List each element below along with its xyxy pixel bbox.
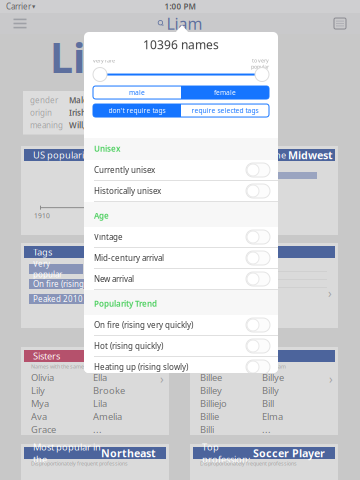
button[interactable]: Currently unisex <box>84 160 278 181</box>
staticText: Names with the same style as Liam <box>31 363 117 370</box>
staticText: › <box>328 285 332 301</box>
staticText: ▾ <box>32 3 35 10</box>
staticText: very rare <box>93 57 115 64</box>
staticText: popular <box>251 63 269 70</box>
staticText: ... <box>93 423 102 436</box>
staticText: Tags <box>33 246 52 258</box>
staticText: Billi <box>200 423 214 436</box>
staticText: Billye <box>262 371 284 384</box>
staticText: Brothers <box>202 350 240 362</box>
staticText: Will, desire <box>69 120 111 130</box>
button[interactable]: Historically unisex <box>84 181 278 202</box>
button[interactable]: Vintage <box>84 227 278 248</box>
button[interactable]: New arrival <box>84 269 278 290</box>
button[interactable]: Heating up (rising slowly) <box>84 357 278 378</box>
staticText: 10396 names <box>143 36 219 52</box>
staticText: › <box>160 371 164 387</box>
staticText: Disproportionately frequent professions <box>31 460 128 467</box>
staticText: Brooke <box>93 384 125 397</box>
staticText: Sisters <box>33 350 60 362</box>
staticText: Billie <box>200 410 219 423</box>
button[interactable]: Menu <box>8 14 32 32</box>
staticText: male <box>129 88 145 97</box>
staticText: Mid-century arrival <box>94 253 164 263</box>
staticText: Elma <box>262 410 283 423</box>
staticText: 1:00 PM <box>164 1 195 12</box>
staticText: don't require tags <box>108 106 165 115</box>
staticText: female <box>214 88 236 97</box>
staticText: gender <box>30 95 58 105</box>
staticText: Liam <box>166 13 202 34</box>
button[interactable]: Mid-century arrival <box>84 248 278 269</box>
staticText: Lila <box>93 397 107 410</box>
staticText: Disproportionately frequent professions <box>200 460 297 467</box>
staticText: Ella <box>93 371 107 384</box>
staticText: Names with the same style as Liam <box>200 363 286 370</box>
staticText: to very <box>252 57 269 64</box>
staticText: Unisex <box>94 143 120 154</box>
staticText: Peaked 2010 or later <box>33 294 112 304</box>
staticText: On fire (rising very quickly) <box>33 279 132 289</box>
staticText: Billy <box>262 384 279 397</box>
staticText: Age <box>94 210 109 221</box>
button[interactable]: List view <box>328 14 352 32</box>
button[interactable]: don't require tags <box>93 104 181 117</box>
staticText: US popularity <box>33 149 92 161</box>
staticText: Similar boys <box>202 246 253 258</box>
staticText: Billie <box>91 264 109 274</box>
staticText: ... <box>262 423 271 436</box>
button[interactable]: require selected tags <box>181 104 269 117</box>
staticText: Midwest <box>288 148 333 162</box>
staticText: Very popular <box>33 258 62 280</box>
staticText: Vintage <box>94 232 123 242</box>
button[interactable]: male <box>93 86 181 99</box>
staticText: Billey <box>200 384 222 397</box>
staticText: Currently unisex <box>94 165 155 175</box>
staticText: Irish <box>69 107 86 118</box>
staticText: Heating up (rising slowly) <box>94 362 188 372</box>
button[interactable]: Hot (rising quickly) <box>84 336 278 357</box>
staticText: Top profession: <box>202 441 253 465</box>
staticText: Grace <box>31 423 56 436</box>
staticText: Bill <box>262 397 274 410</box>
staticText: Male <box>69 95 88 105</box>
button[interactable]: female <box>181 86 269 99</box>
staticText: Most popular in the <box>33 441 101 465</box>
staticText: New arrival <box>94 274 134 284</box>
staticText: require selected tags <box>191 106 258 115</box>
staticText: 1930 <box>91 211 107 220</box>
staticText: Hot (rising quickly) <box>94 341 163 351</box>
button[interactable]: Liam <box>157 14 202 32</box>
staticText: Northeast <box>101 446 156 460</box>
staticText: meaning <box>30 120 63 130</box>
staticText: On fire (rising very quickly) <box>94 320 193 330</box>
staticText: Historically unisex <box>94 186 161 196</box>
staticText: Most popular in the <box>202 149 288 161</box>
staticText: Lily <box>31 384 45 397</box>
staticText: Ava <box>31 410 47 423</box>
staticText: Billee <box>200 371 222 384</box>
staticText: Popularity Trend <box>94 298 157 309</box>
staticText: Carrier <box>6 1 31 12</box>
staticText: Billiejo <box>200 397 227 410</box>
staticText: Olivia <box>31 371 54 384</box>
staticText: Amelia <box>93 410 122 423</box>
staticText: Liam <box>50 30 150 84</box>
staticText: origin <box>30 107 52 118</box>
button[interactable]: On fire (rising very quickly) <box>84 315 278 336</box>
staticText: › <box>329 371 333 387</box>
button[interactable]: Pronounce name <box>93 71 107 83</box>
staticText: Mya <box>31 397 49 410</box>
staticText: 1910 <box>34 211 50 220</box>
staticText: Soccer Player <box>253 446 325 460</box>
